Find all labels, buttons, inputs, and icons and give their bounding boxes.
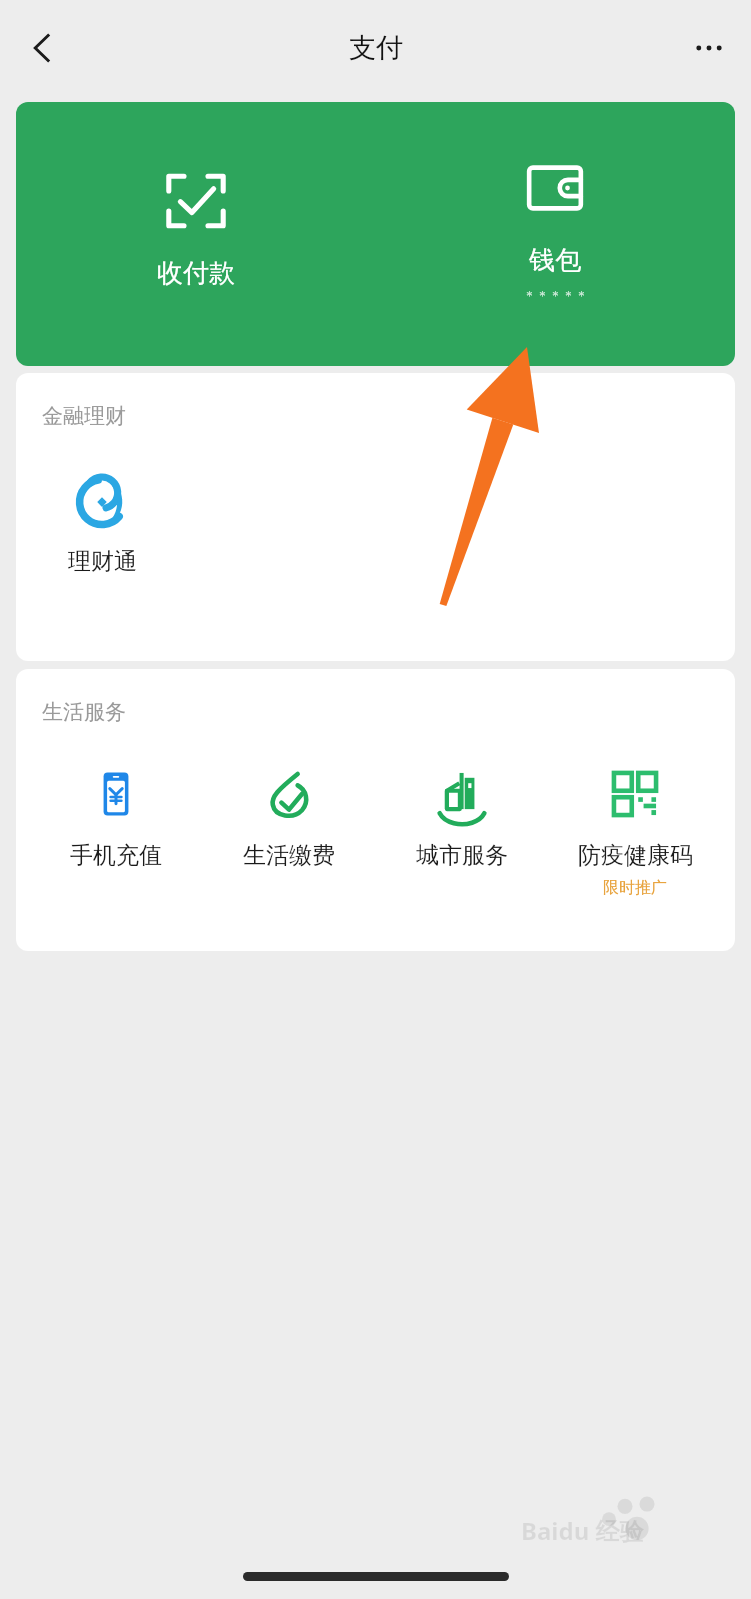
staticText: 金融理财 [42, 403, 126, 429]
staticText: Baidu 经验 [521, 1514, 644, 1547]
button[interactable]: 理财通 [38, 473, 166, 576]
staticText: 手机充值 [70, 841, 162, 870]
button[interactable]: 生活缴费 [206, 767, 372, 870]
staticText: 生活缴费 [243, 841, 335, 870]
staticText: 理财通 [68, 547, 137, 576]
button[interactable]: 城市服务 [379, 767, 545, 870]
button[interactable]: 收付款 [157, 167, 235, 290]
staticText: 生活服务 [42, 699, 126, 725]
button[interactable]: 手机充值 [33, 767, 199, 870]
staticText: 收付款 [157, 257, 235, 290]
button[interactable]: Back [10, 16, 74, 80]
button[interactable]: More options [677, 16, 741, 80]
staticText: 钱包 [529, 244, 581, 277]
staticText: ＊＊＊＊＊ [523, 287, 588, 303]
button[interactable]: 钱包 [521, 154, 589, 303]
staticText: 限时推广 [603, 878, 667, 898]
staticText: 支付 [349, 31, 403, 65]
button[interactable]: 防疫健康码 [552, 767, 718, 898]
staticText: 防疫健康码 [578, 841, 693, 870]
staticText: 城市服务 [416, 841, 508, 870]
